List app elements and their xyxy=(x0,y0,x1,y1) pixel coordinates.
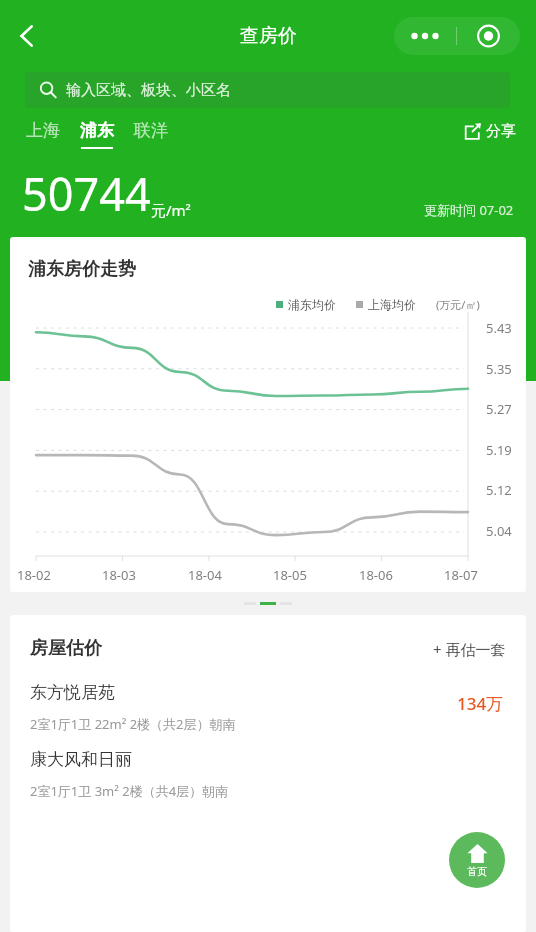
staticText: + 再估一套 xyxy=(433,639,506,659)
staticText: 元/m² xyxy=(151,200,191,220)
staticText: 5.27 xyxy=(486,400,512,418)
staticText: 更新时间 07-02 xyxy=(424,201,514,219)
button[interactable]: 浦东 xyxy=(76,120,118,149)
staticText: 浦东房价走势 xyxy=(28,258,136,281)
button[interactable]: 输入区域、板块、小区名 xyxy=(25,72,510,108)
staticText: 134万 xyxy=(457,692,504,715)
staticText: 联洋 xyxy=(134,120,168,141)
staticText: 18-04 xyxy=(188,566,222,584)
staticText: 房屋估价 xyxy=(30,637,102,660)
button[interactable]: 首页 Home xyxy=(449,832,505,888)
staticText: 2室1厅1卫 3m² 2楼（共4层）朝南 xyxy=(30,782,229,800)
staticText: 上海均价 xyxy=(368,297,416,312)
staticText: 浦东 xyxy=(80,120,114,141)
staticText: 上海 xyxy=(26,120,60,141)
staticText: 18-05 xyxy=(273,566,307,584)
button[interactable]: Back xyxy=(4,13,50,59)
button[interactable]: 东方悦居苑 xyxy=(10,682,526,733)
staticText: 2室1厅1卫 22m² 2楼（共2层）朝南 xyxy=(30,715,236,733)
button[interactable]: Mini program menu xyxy=(394,17,520,55)
staticText: 分享 xyxy=(486,122,516,141)
staticText: 18-07 xyxy=(444,566,478,584)
staticText: 5.43 xyxy=(486,319,512,337)
staticText: 首页 xyxy=(467,865,487,878)
staticText: 查房价 xyxy=(240,24,297,48)
staticText: 康大风和日丽 xyxy=(30,749,132,770)
staticText: 18-02 xyxy=(17,566,51,584)
staticText: 5.35 xyxy=(486,360,512,378)
button[interactable]: + 再估一套 xyxy=(433,639,506,659)
staticText: 18-06 xyxy=(359,566,393,584)
button[interactable]: 分享 xyxy=(464,122,516,141)
staticText: 50744 xyxy=(22,163,151,224)
staticText: 东方悦居苑 xyxy=(30,682,115,703)
button[interactable]: 康大风和日丽 xyxy=(10,749,526,800)
staticText: (万元/㎡) xyxy=(436,297,480,312)
button[interactable]: 联洋 xyxy=(130,120,172,149)
staticText: 5.12 xyxy=(486,481,512,499)
button[interactable]: 上海 xyxy=(22,120,64,149)
staticText: 输入区域、板块、小区名 xyxy=(66,81,231,100)
staticText: 5.04 xyxy=(486,522,512,540)
staticText: 18-03 xyxy=(102,566,136,584)
staticText: 5.19 xyxy=(486,441,512,459)
staticText: 浦东均价 xyxy=(288,297,336,312)
